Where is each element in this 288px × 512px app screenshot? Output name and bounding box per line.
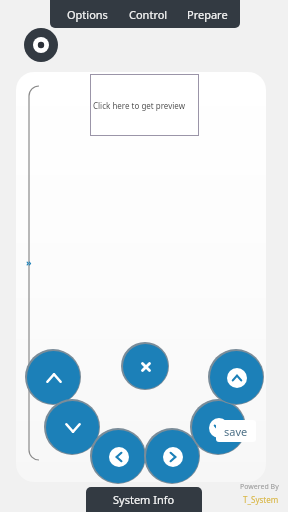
button[interactable]: Control — [120, 0, 176, 28]
button[interactable]: Stop — [121, 342, 169, 390]
staticText: Prepare — [187, 7, 228, 22]
button[interactable]: Move down — [44, 399, 100, 455]
staticText: Control — [129, 7, 168, 22]
button[interactable]: Move up — [25, 349, 81, 405]
button[interactable]: Prepare — [178, 0, 236, 28]
staticText: T_System — [243, 494, 279, 505]
button[interactable]: save — [216, 420, 256, 442]
button[interactable]: System Info — [86, 487, 202, 512]
staticText: Powered By — [240, 482, 279, 492]
button[interactable]: Tilt up — [208, 349, 264, 405]
staticText: System Info — [113, 492, 175, 507]
staticText: save — [224, 424, 248, 439]
button[interactable]: Move right — [144, 428, 200, 484]
button[interactable]: Tilt down — [190, 399, 246, 455]
button[interactable]: Options — [58, 0, 116, 28]
button[interactable]: Record — [24, 28, 58, 62]
button[interactable]: Click here to get preview — [90, 74, 199, 136]
button[interactable]: Move left — [90, 428, 146, 484]
staticText: » — [26, 256, 32, 268]
staticText: Options — [67, 7, 108, 22]
staticText: Click here to get preview — [93, 100, 185, 111]
